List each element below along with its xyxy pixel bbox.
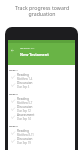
button[interactable]: Discussion	[8, 137, 75, 145]
staticText: Discussion	[17, 137, 33, 141]
button[interactable]: Reading	[8, 129, 75, 137]
staticText: WEEK 2	[9, 92, 18, 95]
staticText: Due Sep 12	[17, 109, 31, 113]
staticText: RELIGION 211	[20, 47, 35, 50]
button[interactable]: Reading	[8, 73, 75, 81]
staticText: Due Sep 14	[17, 117, 31, 121]
button[interactable]: Navigate up	[9, 47, 15, 53]
button[interactable]: Discussion	[8, 105, 75, 113]
staticText: WEEK 3	[9, 124, 18, 127]
button[interactable]: Reading	[8, 97, 75, 105]
staticText: Matthew 8-11	[17, 133, 34, 137]
staticText: Due Sep 5	[17, 85, 30, 89]
staticText: Matthew 5-7	[17, 101, 33, 105]
button[interactable]: Discussion	[8, 81, 75, 89]
staticText: Discussion	[17, 81, 33, 85]
staticText: New Testament	[20, 52, 49, 57]
button[interactable]: Assessment	[8, 113, 75, 121]
staticText: Matthew 1-4	[17, 77, 33, 81]
staticText: Reading	[17, 129, 29, 133]
staticText: Discussion	[17, 105, 33, 109]
staticText: Assessment	[17, 113, 35, 117]
staticText: Track progress toward graduation	[0, 4, 84, 18]
staticText: Reading	[17, 97, 29, 101]
staticText: Due Sep 19	[17, 141, 31, 145]
staticText: Reading	[17, 73, 29, 77]
staticText: WEEK 1	[9, 68, 18, 71]
